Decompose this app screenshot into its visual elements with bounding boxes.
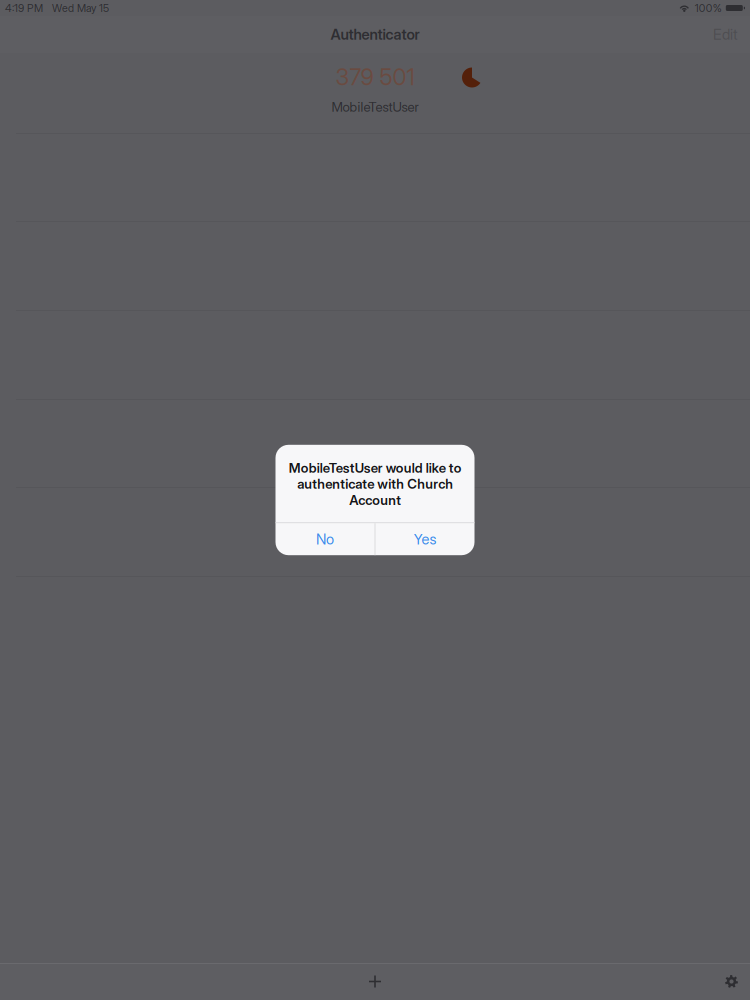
staticText: Yes [413,530,436,548]
button[interactable]: Add account [357,963,393,999]
staticText: No [316,530,334,548]
staticText: 4:19 PM [5,1,43,14]
staticText: MobileTestUser [331,99,418,115]
staticText: Wed May 15 [52,1,109,14]
staticText: 100% [695,1,722,14]
staticText: Authenticator [330,26,419,43]
button[interactable]: 379 501 [0,53,750,133]
button[interactable]: Yes [375,523,474,555]
button[interactable]: Settings [713,964,750,999]
button[interactable]: Edit [701,17,750,52]
staticText: Edit [713,26,738,43]
button[interactable]: No [275,523,374,555]
staticText: 379 501 [335,63,414,91]
staticText: MobileTestUser would like to authenticat… [288,460,461,508]
